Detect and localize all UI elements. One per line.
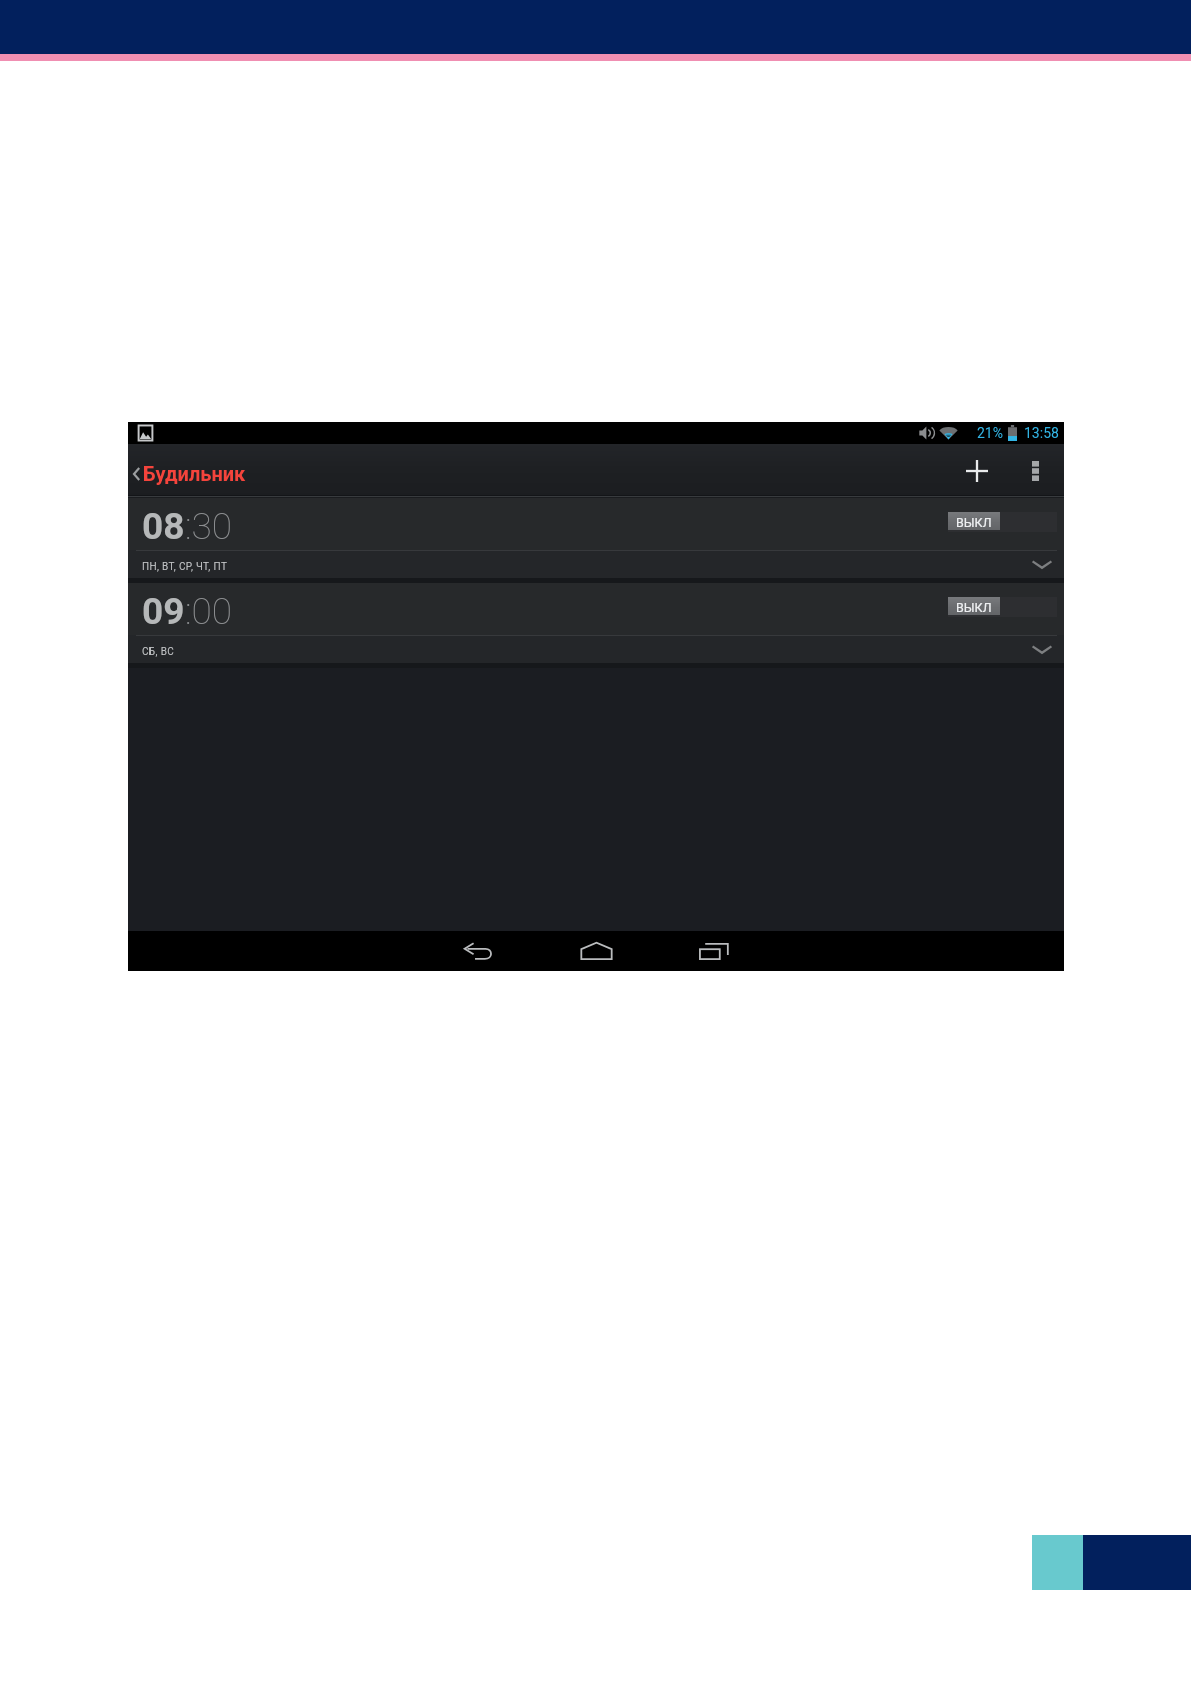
staticText: Будильник xyxy=(143,462,246,485)
staticText: 21% xyxy=(977,425,1003,441)
staticText: :00 xyxy=(185,590,233,633)
button[interactable]: Add alarm xyxy=(948,445,1006,496)
staticText: СБ, ВС xyxy=(142,646,175,658)
staticText: ВЫКЛ xyxy=(956,600,992,615)
staticText: ПН, ВТ, СР, ЧТ, ПТ xyxy=(142,561,228,573)
button[interactable]: Recent apps xyxy=(655,931,773,971)
button[interactable]: Expand alarm xyxy=(1022,636,1062,663)
button[interactable]: 09 xyxy=(128,583,1064,668)
button[interactable]: Будильник xyxy=(128,460,256,483)
staticText: 09 xyxy=(142,590,185,633)
staticText: 13:58 xyxy=(1024,425,1059,441)
button[interactable]: Home xyxy=(537,931,655,971)
button[interactable]: 08 xyxy=(128,498,1064,583)
button[interactable]: Expand alarm xyxy=(1022,551,1062,578)
button[interactable]: Alarm on/off toggle, off xyxy=(948,512,1057,532)
staticText: ВЫКЛ xyxy=(956,515,992,530)
button[interactable]: Alarm on/off toggle, off xyxy=(948,597,1057,617)
staticText: :30 xyxy=(185,505,233,548)
staticText: 08 xyxy=(142,505,185,548)
button[interactable]: More options xyxy=(1006,445,1064,496)
button[interactable]: Back xyxy=(419,931,537,971)
